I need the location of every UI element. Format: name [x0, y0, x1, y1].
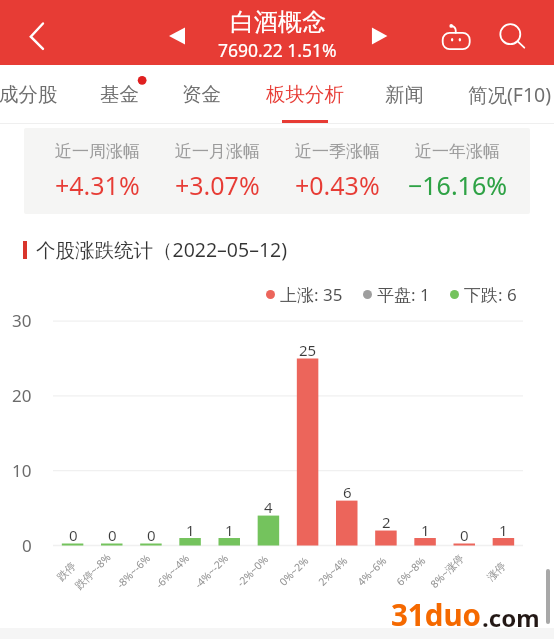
staticText: 10 [12, 459, 32, 482]
staticText: 31duo [391, 594, 482, 634]
button[interactable]: Back [14, 10, 60, 56]
staticText: 4 [264, 497, 273, 517]
staticText: 1 [421, 520, 430, 540]
button[interactable]: Next sector [363, 16, 397, 50]
staticText: 0 [147, 525, 156, 545]
staticText: 25 [299, 340, 317, 360]
button[interactable]: 成分股 [0, 65, 60, 124]
button[interactable]: AI assistant [433, 10, 479, 56]
staticText: 上涨: 35 [280, 283, 343, 306]
staticText: 20 [12, 384, 32, 407]
staticText: 基金 [100, 82, 139, 107]
staticText: 下跌: 6 [464, 283, 517, 306]
button[interactable]: 基金 [93, 65, 145, 124]
staticText: 0%~2% [276, 553, 312, 589]
staticText: 0 [69, 525, 78, 545]
staticText: 近一周涨幅 [55, 141, 140, 162]
staticText: -4%~-2% [191, 551, 232, 591]
staticText: 平盘: 1 [377, 283, 430, 306]
button[interactable]: 简况(F10) [465, 65, 554, 124]
staticText: 0 [460, 525, 469, 545]
staticText: -6%~-4% [152, 551, 193, 591]
staticText: 1 [499, 520, 508, 540]
staticText: 个股涨跌统计（2022–05–12) [36, 236, 288, 263]
staticText: −16.16% [408, 168, 507, 202]
staticText: 跌停 [54, 559, 78, 583]
staticText: -8%~-6% [113, 551, 154, 591]
staticText: 涨停 [484, 559, 508, 583]
staticText: 6 [343, 482, 352, 502]
staticText: 近一年涨幅 [415, 141, 500, 162]
staticText: +0.43% [295, 168, 380, 202]
staticText: 成分股 [0, 82, 58, 107]
staticText: 资金 [182, 82, 221, 107]
staticText: +3.07% [175, 168, 260, 202]
staticText: 简况(F10) [468, 81, 552, 108]
button[interactable]: 新闻 [378, 65, 430, 124]
staticText: 1 [186, 520, 195, 540]
staticText: .com [482, 601, 540, 634]
staticText: 0 [22, 534, 32, 557]
button[interactable]: Search [488, 10, 534, 56]
button[interactable]: 板块分析 [260, 65, 350, 124]
staticText: 7690.22 1.51% [218, 38, 337, 62]
staticText: 近一季涨幅 [295, 141, 380, 162]
staticText: 2%~4% [315, 553, 351, 589]
staticText: 2 [382, 512, 391, 532]
button[interactable]: Previous sector [161, 16, 195, 50]
staticText: 30 [12, 309, 32, 332]
staticText: 1 [225, 520, 234, 540]
staticText: 板块分析 [266, 82, 344, 107]
staticText: -2%~0% [234, 552, 271, 590]
staticText: 8%~涨停 [427, 551, 467, 591]
button[interactable]: 资金 [174, 65, 228, 124]
staticText: 白酒概念 [230, 7, 326, 37]
staticText: 6%~8% [393, 553, 429, 589]
staticText: 近一月涨幅 [175, 141, 260, 162]
staticText: 0 [108, 525, 117, 545]
staticText: 4%~6% [354, 553, 390, 589]
staticText: 跌停~-8% [72, 550, 114, 592]
staticText: 新闻 [385, 82, 424, 107]
staticText: +4.31% [55, 168, 140, 202]
